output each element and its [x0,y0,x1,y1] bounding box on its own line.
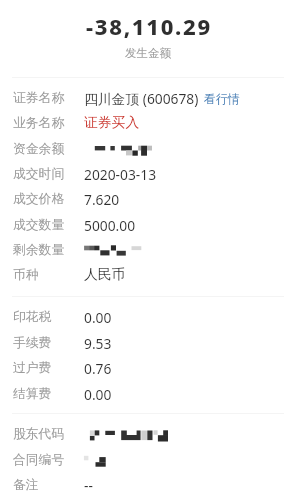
button[interactable]: 合同编号 [0,452,296,477]
staticText: 手续费 [13,335,52,351]
button[interactable]: 手续费 [0,335,296,360]
staticText: 业务名称 [13,115,65,131]
staticText: 资金余额 [13,141,65,157]
staticText: 0.00 [84,385,112,404]
button[interactable]: 剩余数量 [0,242,296,267]
staticText: 成交数量 [13,217,65,233]
button[interactable]: 备注 [0,477,296,500]
button[interactable]: 看行情 [204,91,240,106]
staticText: 人民币 [84,266,126,283]
staticText: 印花税 [13,309,52,325]
staticText: 过户费 [13,360,52,376]
staticText: 5000.00 [84,216,136,235]
button[interactable]: 业务名称 [0,115,296,140]
staticText: 币种 [13,267,39,283]
staticText: 证券名称 [13,90,65,106]
button[interactable]: 成交数量 [0,217,296,242]
staticText: 合同编号 [13,452,65,468]
staticText: 证券买入 [84,114,140,131]
button[interactable]: 结算费 [0,386,296,411]
staticText: 成交时间 [13,166,65,182]
staticText: 结算费 [13,386,52,402]
button[interactable]: 过户费 [0,360,296,385]
staticText: 备注 [13,477,39,493]
button[interactable]: 资金余额 [0,141,296,166]
staticText: 成交价格 [13,191,65,207]
button[interactable]: 币种 [0,267,296,292]
button[interactable]: 成交价格 [0,191,296,216]
staticText: 9.53 [84,334,112,353]
staticText: -38,110.29 [1,11,296,41]
staticText: 剩余数量 [13,242,65,258]
button[interactable]: 印花税 [0,309,296,334]
staticText: -- [84,476,93,495]
staticText: 0.76 [84,359,112,378]
staticText: 四川金顶 (600678) [84,89,199,108]
staticText: 股东代码 [13,426,65,442]
staticText: 看行情 [204,91,240,106]
staticText: 发生金额 [0,46,296,60]
button[interactable]: 股东代码 [0,426,296,451]
staticText: 2020-03-13 [84,165,157,184]
button[interactable]: 成交时间 [0,166,296,191]
staticText: 7.620 [84,190,120,209]
staticText: 0.00 [84,308,112,327]
button[interactable]: 证券名称 [0,90,296,115]
